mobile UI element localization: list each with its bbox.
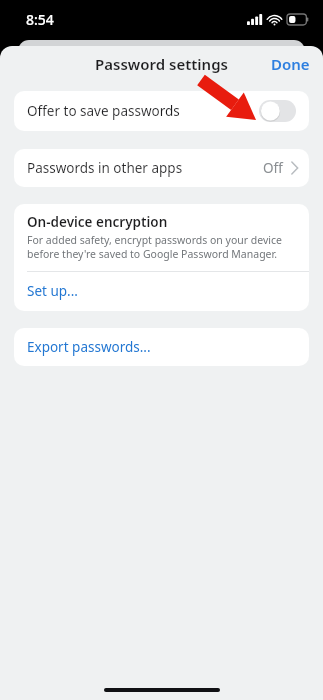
staticText: 8:54 — [26, 10, 54, 29]
button[interactable]: Passwords in other apps — [14, 149, 309, 187]
button[interactable]: Offer to save passwords — [14, 91, 309, 131]
staticText: Export passwords... — [27, 338, 151, 356]
staticText: On-device encryption — [27, 213, 168, 231]
staticText: Set up... — [27, 282, 78, 300]
staticText: For added safety, encrypt passwords on y… — [27, 233, 296, 261]
staticText: Done — [271, 54, 310, 74]
staticText: Passwords in other apps — [27, 159, 183, 177]
button[interactable]: Done — [258, 48, 323, 80]
staticText: Offer to save passwords — [27, 102, 180, 120]
other: Annotation arrow pointing at toggle — [0, 0, 323, 700]
staticText: Off — [263, 159, 283, 177]
staticText: Password settings — [95, 54, 228, 74]
button[interactable]: Export passwords... — [14, 328, 309, 366]
button[interactable]: Set up... — [14, 272, 309, 311]
